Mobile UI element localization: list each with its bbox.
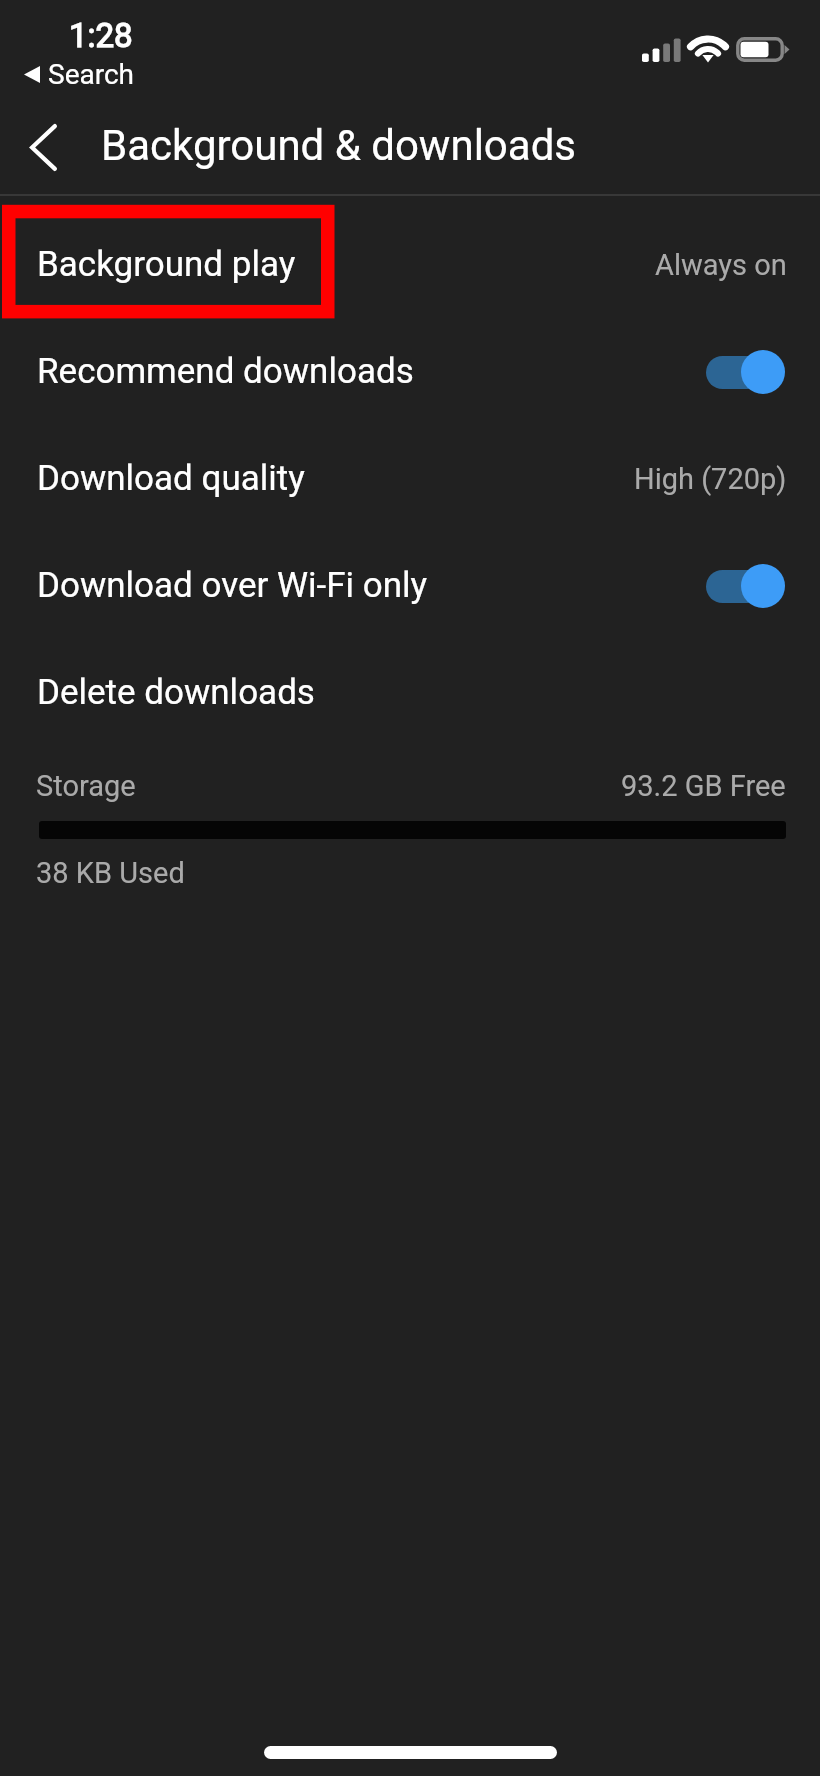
button[interactable]: Background play — [0, 211, 820, 318]
staticText: 38 KB Used — [36, 856, 185, 890]
staticText: Download over Wi-Fi only — [37, 565, 428, 606]
button[interactable]: Download quality — [0, 425, 820, 532]
button[interactable]: Delete downloads — [0, 639, 820, 746]
button[interactable]: Download over Wi-Fi only — [0, 532, 820, 639]
button[interactable]: Back — [0, 100, 86, 194]
staticText: Download quality — [37, 458, 305, 499]
staticText: 1:28 — [69, 16, 133, 55]
staticText: Delete downloads — [37, 672, 315, 713]
button[interactable]: Recommend downloads — [0, 318, 820, 425]
staticText: Recommend downloads — [37, 351, 414, 392]
staticText: 93.2 GB Free — [621, 769, 786, 803]
staticText: Background & downloads — [101, 121, 577, 170]
staticText: High (720p) — [634, 462, 787, 496]
staticText: Search — [48, 58, 135, 91]
staticText: Background play — [37, 244, 296, 285]
staticText: Always on — [655, 248, 787, 282]
staticText: Storage — [36, 769, 136, 803]
